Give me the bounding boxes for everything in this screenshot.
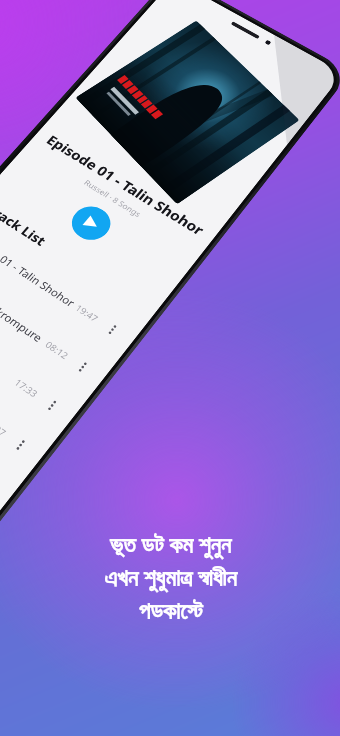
staticText: Russell · 8 Songs xyxy=(82,177,143,219)
staticText: Episode 01 - Talin Shohor xyxy=(0,229,81,312)
staticText: 08:12 xyxy=(43,338,71,362)
button[interactable]: Episode 01 - Bikrompure Voy xyxy=(0,252,104,390)
staticText: Episode 01 - Talin Shohor xyxy=(43,131,209,239)
button[interactable]: Play xyxy=(64,200,118,247)
button[interactable]: Episode 01 - Projapoti xyxy=(0,360,10,511)
button[interactable]: Episode 01 - Ovishopto Nirjon xyxy=(0,323,42,469)
staticText: 13:27 xyxy=(0,415,9,439)
staticText: 17:33 xyxy=(12,376,41,400)
staticText: Episode 01 - Bikrompure Voy xyxy=(0,264,52,349)
staticText: Track List xyxy=(0,201,50,249)
staticText: Episode 01 - Rondhi xyxy=(0,299,21,387)
staticText: 19:47 xyxy=(73,302,101,324)
button[interactable]: Episode 01 - Talin Shohor xyxy=(0,218,133,352)
staticText: ভূত ডট কম শুনুন এখন শুধুমাত্র স্বাধীন পড… xyxy=(104,528,237,623)
button[interactable]: Episode 01 - Rondhi xyxy=(0,287,73,429)
